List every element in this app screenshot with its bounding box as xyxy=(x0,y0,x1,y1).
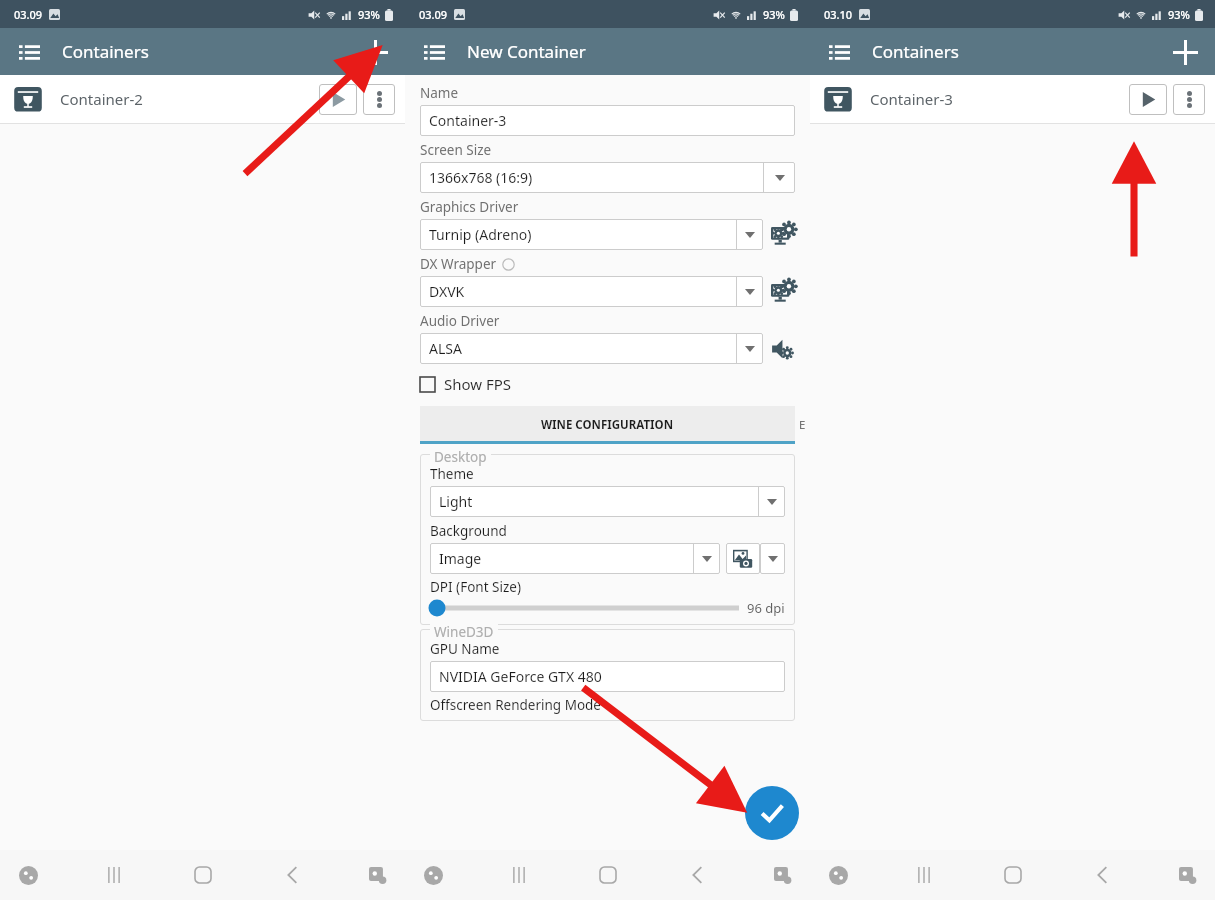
staticText: Graphics Driver xyxy=(420,198,519,216)
button[interactable]: Menu xyxy=(820,33,858,71)
button[interactable]: Audio settings xyxy=(769,336,795,362)
staticText: NVIDIA GeForce GTX 480 xyxy=(439,667,602,686)
button[interactable]: Light xyxy=(430,486,785,517)
staticText: New Container xyxy=(467,40,586,63)
staticText: Name xyxy=(420,84,459,102)
staticText: Image xyxy=(439,549,693,568)
button[interactable] xyxy=(430,598,739,618)
staticText: 93% xyxy=(763,7,785,22)
button[interactable]: Recents xyxy=(92,853,136,897)
staticText: 96 dpi xyxy=(747,599,785,617)
staticText: 03.09 xyxy=(419,7,448,22)
staticText: 93% xyxy=(1168,7,1190,22)
staticText: Audio Driver xyxy=(420,312,500,330)
button[interactable]: Image xyxy=(430,543,720,574)
staticText: WineD3D xyxy=(434,623,494,641)
button[interactable]: WINE CONFIGURATION xyxy=(420,406,795,444)
button[interactable]: Screenshot xyxy=(764,857,800,893)
button[interactable]: Turnip (Adreno) xyxy=(420,219,763,250)
button[interactable]: Add container xyxy=(353,30,397,74)
button[interactable]: Assistant xyxy=(415,857,451,893)
button[interactable]: Save container xyxy=(745,786,799,840)
button[interactable]: 1366x768 (16:9) xyxy=(420,162,795,193)
button[interactable]: NVIDIA GeForce GTX 480 xyxy=(430,661,785,692)
button[interactable]: Container-3 xyxy=(420,105,795,136)
staticText: Containers xyxy=(872,40,959,63)
staticText: 03.09 xyxy=(14,7,43,22)
button[interactable]: DXVK xyxy=(420,276,763,307)
button[interactable]: Add container xyxy=(1163,30,1207,74)
button[interactable]: Pick background image xyxy=(726,543,760,574)
staticText: ALSA xyxy=(429,339,736,358)
staticText: Container-2 xyxy=(60,89,319,109)
staticText: Container-3 xyxy=(870,89,1129,109)
button[interactable]: DX wrapper settings xyxy=(769,279,795,305)
button[interactable]: Container-3 xyxy=(810,75,1215,123)
staticText: WINE CONFIGURATION xyxy=(541,417,674,433)
staticText: Offscreen Rendering Mode xyxy=(430,696,601,714)
button[interactable]: More options xyxy=(1173,84,1205,115)
button[interactable]: Back xyxy=(270,853,314,897)
button[interactable]: ALSA xyxy=(420,333,763,364)
staticText: 03.10 xyxy=(824,7,853,22)
button[interactable]: Menu xyxy=(415,33,453,71)
button[interactable]: Recents xyxy=(497,853,541,897)
staticText: Screen Size xyxy=(420,141,492,159)
button[interactable]: Run container xyxy=(319,84,357,115)
button[interactable]: Screenshot xyxy=(359,857,395,893)
button[interactable]: Home xyxy=(181,853,225,897)
staticText: DX Wrapper xyxy=(420,255,497,273)
staticText: 93% xyxy=(358,7,380,22)
button[interactable]: Container-2 xyxy=(0,75,405,123)
button[interactable]: Back xyxy=(1080,853,1124,897)
button[interactable]: Recents xyxy=(902,853,946,897)
button[interactable]: Background options xyxy=(760,543,785,574)
staticText: Container-3 xyxy=(429,111,507,130)
staticText: 1366x768 (16:9) xyxy=(429,168,763,187)
button[interactable]: Assistant xyxy=(10,857,46,893)
button[interactable]: Graphics driver settings xyxy=(769,222,795,248)
staticText: Containers xyxy=(62,40,149,63)
staticText: Theme xyxy=(430,465,474,483)
staticText: Background xyxy=(430,522,507,540)
staticText: Turnip (Adreno) xyxy=(429,225,736,244)
staticText: GPU Name xyxy=(430,640,500,658)
button[interactable]: More options xyxy=(363,84,395,115)
button[interactable]: Screenshot xyxy=(1169,857,1205,893)
button[interactable]: Home xyxy=(991,853,1035,897)
button[interactable]: Assistant xyxy=(820,857,856,893)
button[interactable]: Back xyxy=(675,853,719,897)
button[interactable]: Home xyxy=(586,853,630,897)
staticText: DPI (Font Size) xyxy=(430,578,521,596)
staticText: DXVK xyxy=(429,282,736,301)
staticText: Desktop xyxy=(434,448,487,466)
button[interactable]: Menu xyxy=(10,33,48,71)
staticText: Show FPS xyxy=(444,374,512,394)
staticText: Light xyxy=(439,492,758,511)
button[interactable]: Show FPS xyxy=(420,374,512,394)
button[interactable]: Run container xyxy=(1129,84,1167,115)
